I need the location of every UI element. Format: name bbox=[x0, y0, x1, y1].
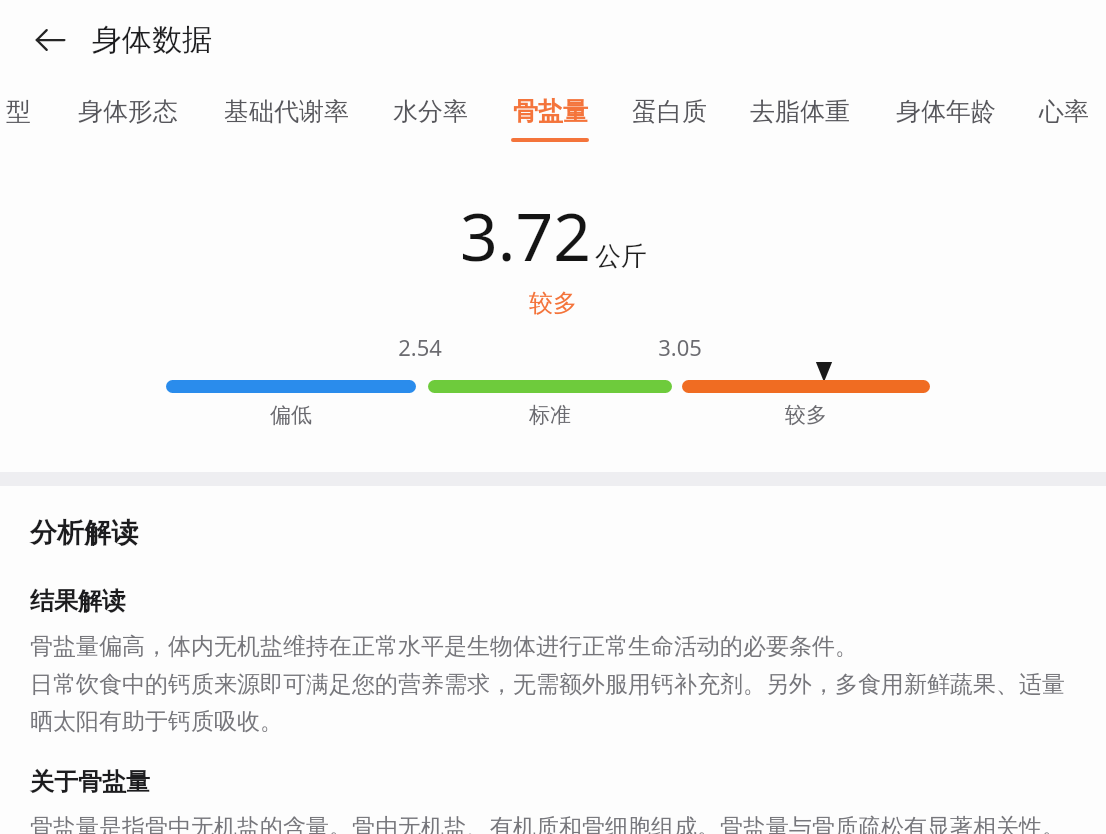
staticText: 基础代谢率 bbox=[224, 96, 349, 127]
staticText: 关于骨盐量 bbox=[30, 767, 150, 797]
button[interactable]: 去脂体重 bbox=[716, 80, 884, 152]
button[interactable]: 骨盐量 bbox=[466, 80, 634, 152]
staticText: 型 bbox=[6, 96, 31, 127]
staticText: 水分率 bbox=[393, 96, 468, 127]
staticText: 心率 bbox=[1039, 96, 1089, 127]
staticText: 偏低 bbox=[241, 402, 341, 428]
staticText: 较多 bbox=[756, 402, 856, 428]
button[interactable]: 身体形态 bbox=[44, 80, 212, 152]
staticText: 骨盐量是指骨中无机盐的含量。骨由无机盐、有机质和骨细胞组成。骨盐量与骨质疏松有显… bbox=[30, 813, 1065, 834]
staticText: 公斤 bbox=[595, 240, 647, 273]
staticText: 较多 bbox=[529, 288, 577, 318]
button[interactable]: 蛋白质 bbox=[585, 80, 753, 152]
button[interactable]: 基础代谢率 bbox=[202, 80, 370, 152]
staticText: 3.72 bbox=[460, 190, 591, 280]
staticText: 去脂体重 bbox=[750, 96, 850, 127]
button[interactable]: 返回 bbox=[22, 12, 78, 68]
staticText: 骨盐量 bbox=[513, 96, 588, 127]
staticText: 身体形态 bbox=[78, 96, 178, 127]
staticText: 身体年龄 bbox=[896, 96, 996, 127]
staticText: 骨盐量偏高，体内无机盐维持在正常水平是生物体进行正常生命活动的必要条件。 日常饮… bbox=[30, 632, 1080, 735]
button[interactable]: 水分率 bbox=[346, 80, 514, 152]
button[interactable]: 心率 bbox=[980, 80, 1106, 152]
staticText: 蛋白质 bbox=[632, 96, 707, 127]
staticText: 分析解读 bbox=[30, 516, 138, 550]
staticText: 2.54 bbox=[390, 332, 450, 362]
staticText: 身体数据 bbox=[92, 21, 212, 59]
button[interactable]: 身体年龄 bbox=[862, 80, 1030, 152]
staticText: 标准 bbox=[500, 402, 600, 428]
button[interactable]: 型 bbox=[0, 80, 102, 152]
staticText: 结果解读 bbox=[30, 586, 126, 616]
staticText: 3.05 bbox=[650, 332, 710, 362]
